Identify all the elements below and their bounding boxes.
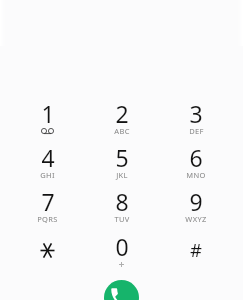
staticText: 1 [41,98,55,129]
staticText: 6 [189,142,203,173]
staticText: # [190,237,202,262]
staticText: WXYZ [185,214,207,224]
staticText: GHI [40,170,55,180]
staticText: DEF [189,126,204,136]
button[interactable]: 1 voicemail [10,98,85,142]
button[interactable]: 8 TUV [85,186,159,230]
button[interactable]: 0 plus [85,230,159,274]
staticText: 7 [41,186,55,217]
button[interactable]: 4 GHI [10,142,85,186]
staticText: 2 [115,98,129,129]
button[interactable]: 9 WXYZ [159,186,233,230]
staticText: PQRS [37,214,58,224]
staticText: 4 [41,142,55,173]
button[interactable]: 3 DEF [159,98,233,142]
button[interactable]: star [10,230,85,274]
staticText: JKL [116,170,128,180]
button[interactable]: 7 PQRS [10,186,85,230]
staticText: 9 [189,186,203,217]
button[interactable]: pound [159,230,233,274]
button[interactable]: 5 JKL [85,142,159,186]
staticText: MNO [186,170,206,180]
staticText: 5 [115,142,129,173]
staticText: 8 [115,186,129,217]
staticText: TUV [114,214,130,224]
staticText: ABC [114,126,130,136]
button[interactable]: 6 MNO [159,142,233,186]
button[interactable]: 2 ABC [85,98,159,142]
button[interactable]: Call [104,280,139,300]
staticText: 3 [189,98,203,129]
staticText: 0 [115,231,129,262]
